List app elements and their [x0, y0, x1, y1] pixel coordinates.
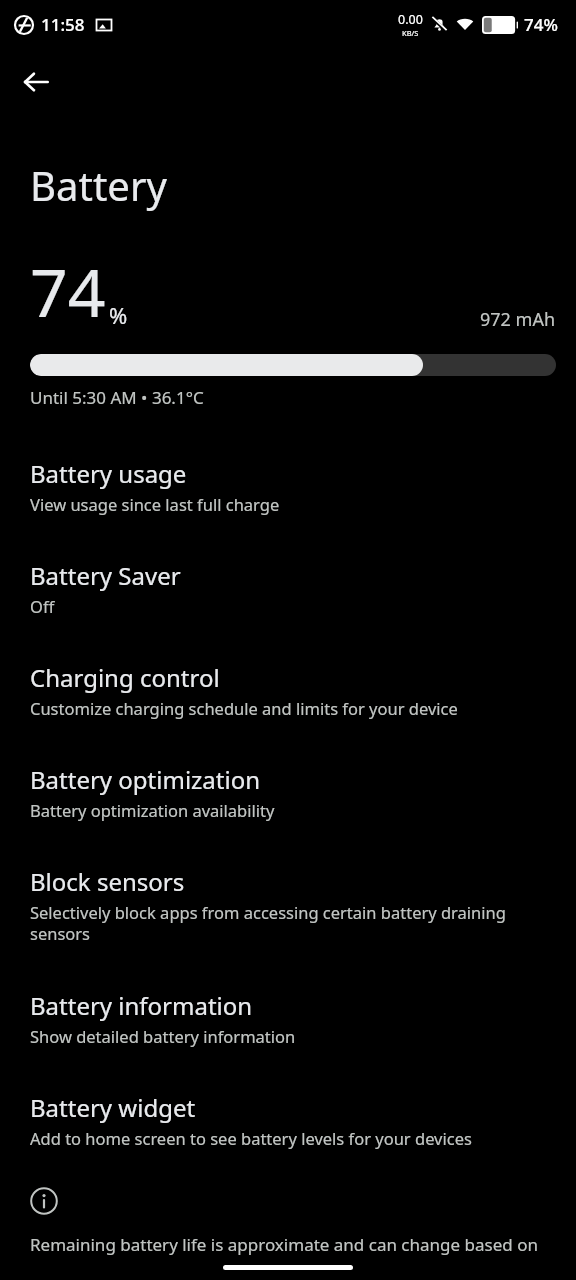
- staticText: Battery: [30, 158, 167, 212]
- staticText: 0.00: [398, 11, 423, 28]
- button[interactable]: Charging control: [0, 617, 576, 719]
- staticText: Selectively block apps from accessing ce…: [30, 901, 556, 945]
- button[interactable]: Battery Saver: [0, 515, 576, 617]
- button[interactable]: Battery usage: [0, 409, 576, 515]
- staticText: Block sensors: [30, 865, 185, 898]
- staticText: Battery widget: [30, 1091, 196, 1124]
- staticText: %: [109, 300, 128, 330]
- staticText: 74: [30, 246, 106, 336]
- staticText: Battery usage: [30, 457, 187, 490]
- button[interactable]: Block sensors: [0, 821, 576, 945]
- staticText: 11:58: [41, 13, 85, 36]
- staticText: Customize charging schedule and limits f…: [30, 697, 458, 719]
- staticText: Battery Saver: [30, 559, 181, 592]
- staticText: KB/S: [402, 28, 419, 38]
- staticText: 972 mAh: [480, 307, 556, 332]
- staticText: Remaining battery life is approximate an…: [30, 1233, 538, 1256]
- staticText: Off: [30, 595, 55, 617]
- staticText: Charging control: [30, 661, 220, 694]
- button[interactable]: Battery optimization: [0, 719, 576, 821]
- staticText: View usage since last full charge: [30, 493, 280, 515]
- button[interactable]: Back: [8, 54, 64, 110]
- staticText: Battery optimization availability: [30, 799, 275, 821]
- staticText: Until 5:30 AM • 36.1°C: [30, 386, 204, 409]
- staticText: 74%: [524, 13, 558, 36]
- button[interactable]: Battery information: [0, 945, 576, 1047]
- staticText: Show detailed battery information: [30, 1025, 296, 1047]
- staticText: Battery information: [30, 989, 253, 1022]
- staticText: Battery optimization: [30, 763, 261, 796]
- staticText: Add to home screen to see battery levels…: [30, 1127, 472, 1149]
- button[interactable]: Battery widget: [0, 1047, 576, 1149]
